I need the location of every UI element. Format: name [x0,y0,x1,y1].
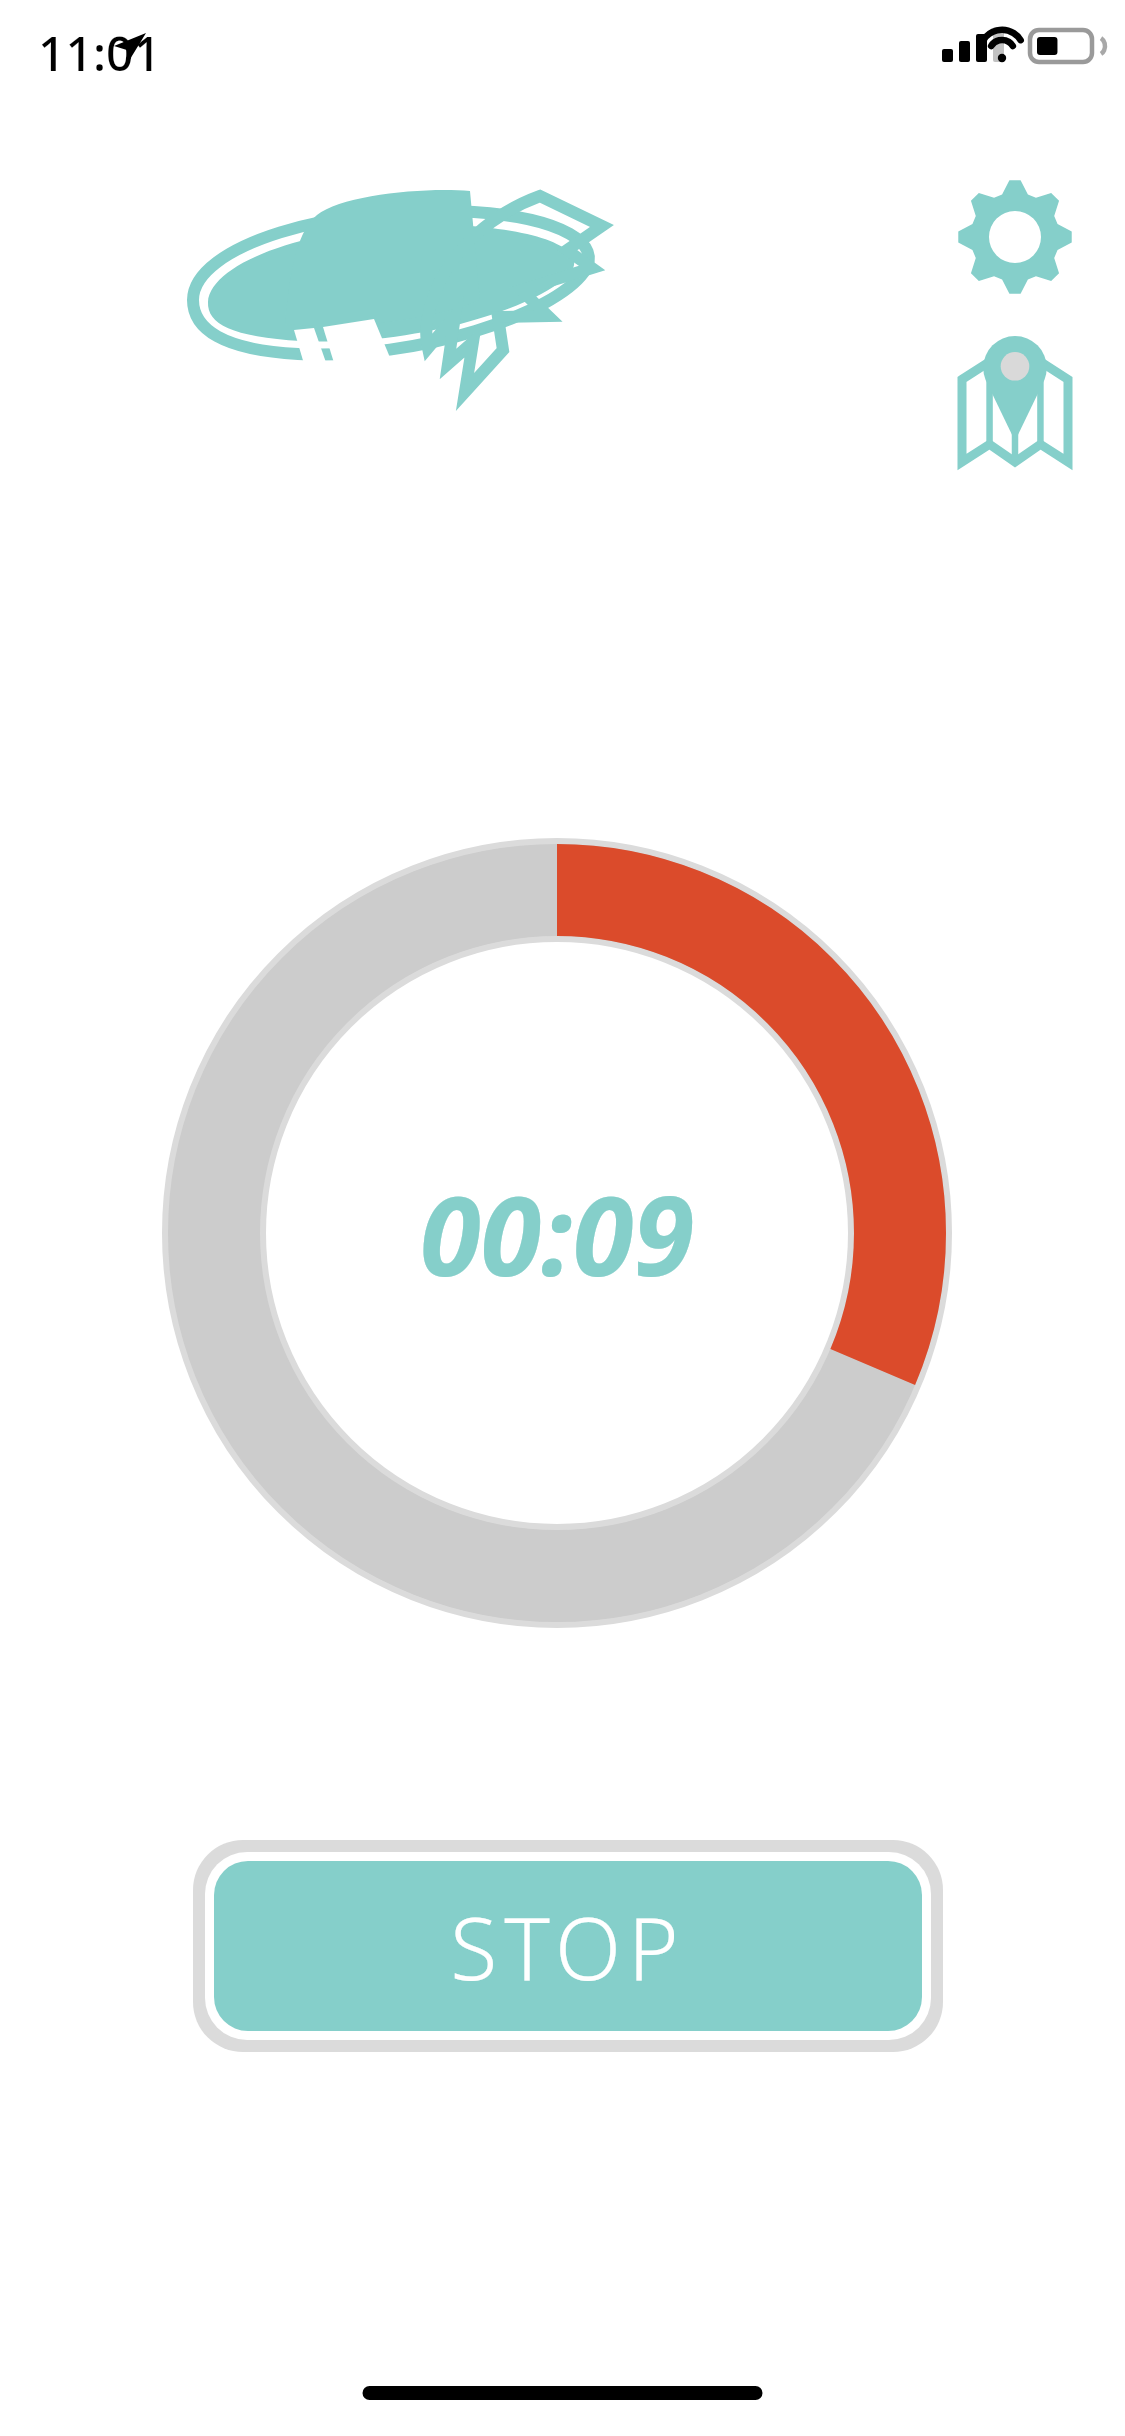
staticText: STOP [450,1888,686,2005]
button[interactable]: STOP [193,1840,943,2052]
staticText: 00:09 [212,1158,902,1308]
button[interactable]: Settings [948,172,1082,306]
staticText: 11:01 [38,20,161,85]
button[interactable]: Map [948,330,1086,468]
